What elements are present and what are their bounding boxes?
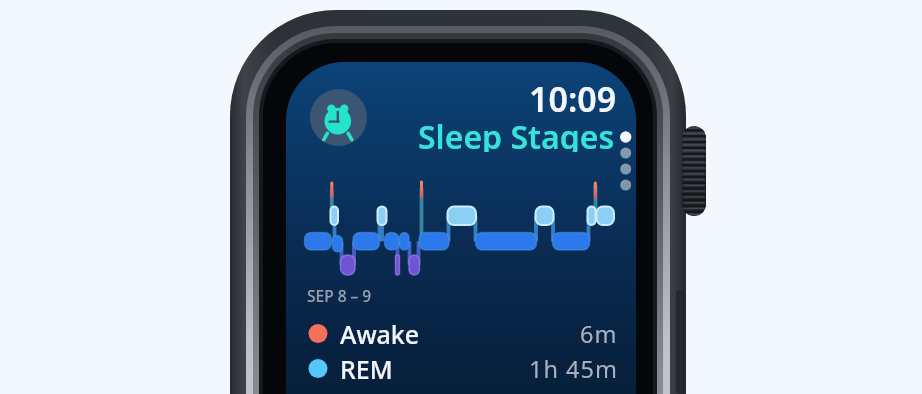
button[interactable]: Awake (303, 317, 618, 350)
button[interactable]: REM (303, 352, 618, 385)
staticText: 10:09 (529, 76, 617, 118)
staticText: Awake (340, 317, 420, 350)
button[interactable]: Sleep Stages (325, 115, 615, 152)
button[interactable] (310, 89, 367, 146)
staticText: Sleep Stages (418, 115, 615, 152)
staticText: 1h 45m (529, 353, 618, 385)
staticText: 6m (580, 318, 618, 350)
staticText: REM (340, 352, 393, 385)
staticText: SEP 8 – 9 (307, 285, 372, 305)
